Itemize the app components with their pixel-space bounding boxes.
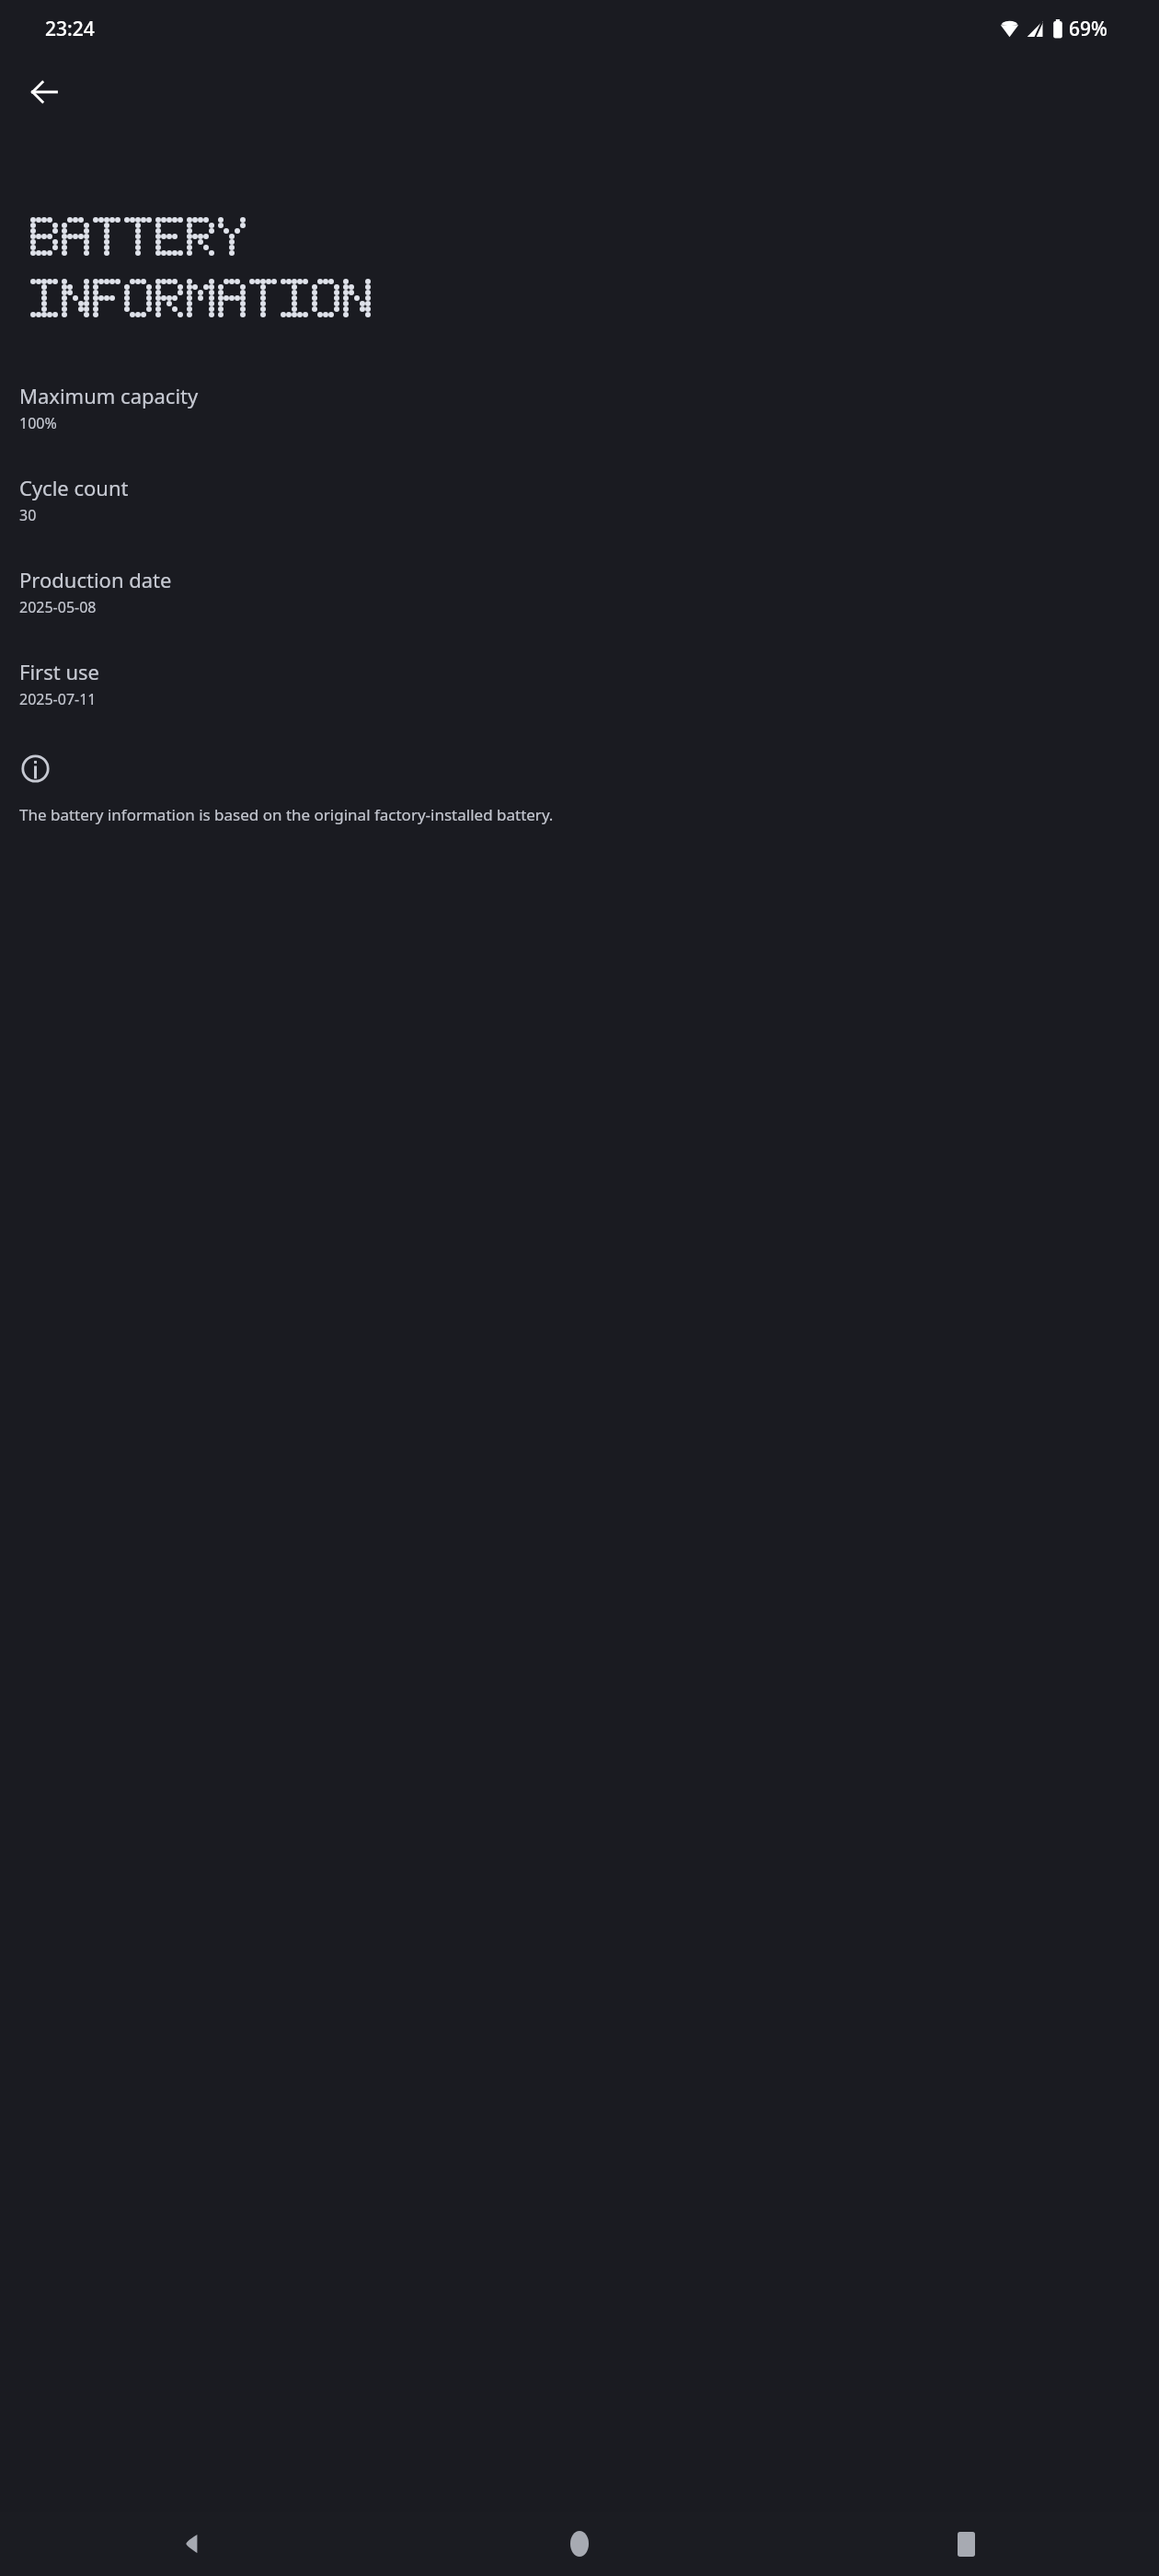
button[interactable]: Back — [0, 2512, 386, 2576]
staticText: 2025-05-08 — [19, 597, 97, 617]
staticText: 23:24 — [45, 16, 95, 42]
button[interactable]: Recent apps — [773, 2512, 1159, 2576]
staticText: 2025-07-11 — [19, 689, 97, 709]
staticText: 30 — [19, 505, 37, 525]
button[interactable]: Home — [386, 2512, 773, 2576]
staticText: First use — [19, 658, 99, 685]
other: Information — [19, 753, 51, 784]
button[interactable]: Back — [20, 68, 68, 116]
staticText: Production date — [19, 566, 172, 593]
staticText: 69% — [1069, 16, 1107, 42]
staticText: 100% — [19, 413, 57, 433]
staticText: The battery information is based on the … — [19, 804, 915, 825]
staticText: Cycle count — [19, 474, 129, 501]
staticText: Maximum capacity — [19, 382, 199, 409]
